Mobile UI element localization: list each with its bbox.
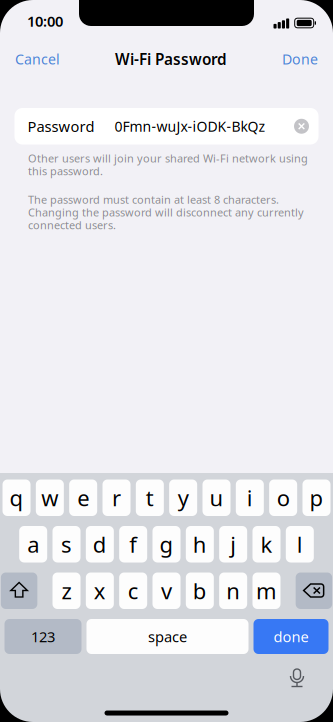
staticText: a [27,529,39,559]
staticText: r [112,483,121,513]
button[interactable]: e [69,479,97,516]
staticText: i [247,483,253,513]
staticText: 123 [31,626,55,646]
button[interactable]: n [219,572,247,609]
staticText: m [256,576,277,606]
staticText: space [148,626,187,646]
staticText: h [193,529,207,559]
staticText: f [129,529,137,559]
staticText: k [260,529,272,559]
staticText: b [193,576,207,606]
staticText: p [309,483,323,513]
button[interactable]: a [19,526,47,562]
staticText: this password. [28,164,103,178]
button[interactable]: o [269,479,297,516]
staticText: c [128,576,139,606]
staticText: The password must contain at least 8 cha… [28,192,279,207]
button[interactable]: Done [282,46,333,72]
staticText: Changing the password will disconnect an… [28,205,304,220]
button[interactable]: b [186,572,214,609]
button[interactable]: s [52,526,80,562]
button[interactable]: q [2,479,30,516]
button[interactable]: 123 [4,619,81,654]
staticText: d [93,529,107,559]
button[interactable]: Shift [1,572,37,609]
button[interactable]: t [136,479,164,516]
staticText: u [209,483,223,513]
button[interactable]: Cancel [0,46,60,72]
button[interactable]: g [152,526,180,562]
staticText: s [61,529,72,559]
button[interactable]: w [36,479,64,516]
button[interactable]: x [86,572,114,609]
staticText: 10:00 [27,11,63,31]
staticText: Other users will join your shared Wi-Fi … [28,151,308,166]
button[interactable]: c [119,572,147,609]
button[interactable]: l [286,526,314,562]
staticText: j [230,529,236,559]
staticText: connected users. [28,217,116,232]
staticText: 0Fmn-wuJx-iODK-BkQz [114,117,265,136]
button[interactable]: i [236,479,264,516]
button[interactable]: f [119,526,147,562]
button[interactable]: done [253,619,328,654]
staticText: x [94,576,106,606]
staticText: Password [27,116,94,136]
button[interactable]: h [186,526,214,562]
staticText: t [146,483,154,513]
button[interactable]: space [86,619,248,654]
staticText: o [277,483,290,513]
staticText: Done [282,49,318,69]
staticText: Wi-Fi Password [115,49,227,69]
staticText: done [273,626,308,646]
staticText: n [226,576,240,606]
staticText: g [159,529,173,559]
staticText: e [77,483,89,513]
button[interactable]: Dictate [285,665,309,695]
button[interactable]: z [52,572,80,609]
button[interactable]: j [219,526,247,562]
staticText: Cancel [15,49,60,69]
button[interactable]: v [152,572,180,609]
staticText: q [9,483,23,513]
button[interactable]: k [252,526,280,562]
button[interactable]: y [169,479,197,516]
button[interactable]: d [86,526,114,562]
button[interactable]: Delete [296,572,332,609]
button[interactable]: r [102,479,130,516]
button[interactable]: Clear text [284,108,318,144]
staticText: y [178,483,189,513]
button[interactable]: m [252,572,280,609]
staticText: w [41,483,58,513]
staticText: z [61,576,71,606]
button[interactable]: p [302,479,330,516]
staticText: v [161,576,172,606]
staticText: l [297,529,303,559]
button[interactable]: u [202,479,230,516]
